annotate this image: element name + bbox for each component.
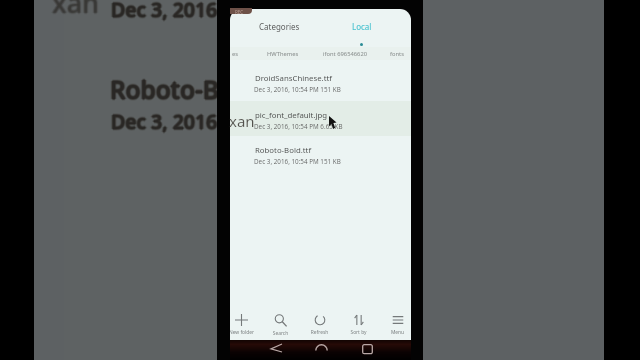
staticText: New folder [230,329,261,336]
button[interactable]: Menu [378,314,411,342]
staticText: Dec 3, 2016 [112,108,219,135]
button[interactable]: pic_font_default.jpg [230,101,411,138]
staticText: Roboto-Bold.ttf [255,145,312,156]
button[interactable]: Search [261,314,300,342]
staticText: Roboto-B [110,75,219,108]
staticText: xan [51,0,99,21]
staticText: Roboto-B [110,71,219,104]
staticText: Roboto-B [111,74,220,107]
staticText: pic_font_default.jpg [255,110,328,121]
staticText: Sort by [339,329,378,336]
staticText: REC [235,9,244,14]
staticText: Categories [259,21,300,32]
staticText: Dec 3, 2016 [110,107,217,134]
staticText: Dec 3, 2016, 10:54 PM 6.65 KB [254,122,343,131]
staticText: Roboto-B [110,74,219,107]
staticText: Dec 3, 2016 [112,0,219,23]
staticText: Dec 3, 2016 [113,0,220,23]
staticText: Dec 3, 2016 [112,0,219,22]
staticText: es [232,50,239,58]
staticText: xan [53,0,101,21]
staticText: Dec 3, 2016 [111,109,218,136]
staticText: Roboto-B [112,73,221,106]
button[interactable]: Back [259,340,293,360]
button[interactable]: Sort by [339,314,378,342]
staticText: Dec 3, 2016 [111,110,218,137]
staticText: HWThemes [267,50,299,58]
staticText: Roboto-B [108,73,217,106]
staticText: Dec 3, 2016 [110,0,217,23]
staticText: Roboto-B [110,73,219,106]
staticText: Local [352,21,372,32]
staticText: xan [52,0,100,23]
staticText: Dec 3, 2016 [111,0,218,24]
staticText: Roboto-B [111,72,220,105]
staticText: Dec 3, 2016 [111,107,218,134]
staticText: Dec 3, 2016 [111,108,218,135]
staticText: Roboto-B [109,72,218,105]
staticText: Dec 3, 2016 [112,107,219,134]
staticText: xan [52,0,100,21]
staticText: Dec 3, 2016 [113,108,220,135]
staticText: xan [54,0,102,21]
staticText: Roboto-B [111,73,220,106]
staticText: xan [53,0,101,22]
staticText: Menu [378,329,411,336]
staticText: ifont 696546620 [323,50,368,58]
staticText: Dec 3, 2016 [109,0,216,23]
staticText: Refresh [300,329,339,336]
staticText: Search [261,330,300,337]
staticText: Dec 3, 2016 [110,108,217,135]
staticText: Dec 3, 2016 [111,0,218,21]
staticText: Dec 3, 2016 [110,0,217,24]
staticText: Dec 3, 2016 [109,108,216,135]
staticText: xan [51,0,99,22]
staticText: xan [50,0,98,21]
staticText: Roboto-B [109,73,218,106]
staticText: fonts [390,50,404,58]
staticText: Dec 3, 2016 [111,0,218,25]
button[interactable]: Categories [234,14,324,39]
button[interactable]: Recents [350,340,384,360]
staticText: xan [53,0,101,20]
button[interactable]: New folder [230,314,261,342]
staticText: Dec 3, 2016 [110,109,217,136]
staticText: Roboto-B [110,72,219,105]
staticText: xan [51,0,99,20]
button[interactable]: Refresh [300,314,339,342]
staticText: Dec 3, 2016 [111,0,218,22]
staticText: Dec 3, 2016 [110,0,217,22]
button[interactable]: DroidSansChinese.ttf [230,64,411,101]
staticText: xan [52,0,100,20]
button[interactable]: Home [304,340,338,360]
staticText: Dec 3, 2016 [112,0,219,24]
staticText: xan [229,111,255,131]
staticText: xan [52,0,100,19]
staticText: Roboto-B [109,74,218,107]
staticText: Dec 3, 2016, 10:54 PM 151 KB [254,157,341,166]
staticText: Dec 3, 2016 [112,109,219,136]
button[interactable]: Roboto-Bold.ttf [230,136,411,173]
staticText: Dec 3, 2016 [111,106,218,133]
staticText: Dec 3, 2016, 10:54 PM 151 KB [254,85,341,94]
staticText: DroidSansChinese.ttf [255,73,332,84]
staticText: xan [52,0,100,22]
button[interactable]: Local [317,14,407,39]
staticText: Dec 3, 2016 [111,0,218,23]
